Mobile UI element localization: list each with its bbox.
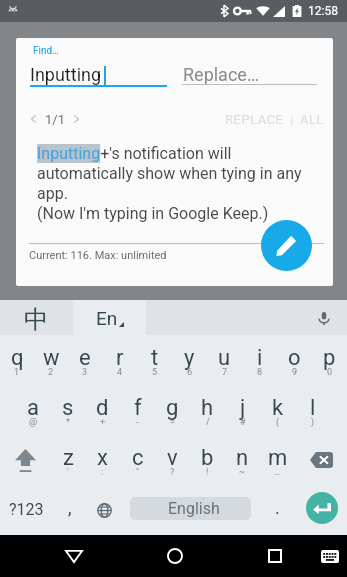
staticText: b: [201, 445, 214, 471]
button[interactable]: z: [51, 435, 85, 485]
button[interactable]: Switch keyboard: [310, 535, 347, 577]
button[interactable]: c: [120, 435, 155, 485]
button[interactable]: REPLACE: [219, 107, 290, 132]
button[interactable]: r: [102, 335, 137, 385]
staticText: o: [288, 345, 301, 371]
button[interactable]: d: [85, 385, 120, 435]
button[interactable]: l: [295, 385, 330, 435]
staticText: @: [29, 417, 38, 428]
staticText: h: [201, 395, 214, 421]
staticText: Current: 116. Max: unlimited: [29, 249, 167, 262]
staticText: Inputting+'s notification will automatic…: [37, 144, 314, 223]
staticText: p: [323, 345, 336, 371]
staticText: English: [168, 499, 220, 518]
staticText: 1/1: [45, 112, 65, 127]
staticText: 中: [24, 304, 49, 335]
staticText: l: [310, 395, 316, 421]
staticText: w: [43, 345, 60, 371]
button[interactable]: h: [190, 385, 225, 435]
button[interactable]: Back: [52, 535, 96, 577]
staticText: n: [236, 445, 249, 471]
staticText: ": [136, 467, 139, 478]
button[interactable]: j: [225, 385, 260, 435]
staticText: En: [96, 307, 118, 329]
staticText: 3: [82, 367, 88, 378]
staticText: #: [240, 417, 246, 428]
staticText: Replace…: [183, 64, 259, 85]
button[interactable]: b: [190, 435, 225, 485]
button[interactable]: Home: [153, 535, 197, 577]
staticText: q: [11, 345, 24, 371]
staticText: =: [170, 417, 175, 428]
button[interactable]: w: [34, 335, 68, 385]
staticText: :: [101, 467, 104, 478]
button[interactable]: En: [73, 300, 146, 335]
staticText: ALL: [300, 112, 324, 127]
button[interactable]: Next match: [67, 110, 85, 128]
staticText: (: [276, 417, 280, 428]
staticText: ': [67, 467, 69, 478]
staticText: 2: [48, 367, 54, 378]
staticText: REPLACE: [225, 112, 284, 127]
button[interactable]: y: [172, 335, 207, 385]
button[interactable]: English: [130, 497, 251, 520]
staticText: j: [240, 395, 246, 421]
button[interactable]: u: [207, 335, 242, 385]
staticText: ?123: [9, 500, 44, 519]
staticText: 12:58: [308, 4, 338, 18]
button[interactable]: Recent apps: [253, 535, 297, 577]
staticText: .: [275, 497, 280, 518]
staticText: ?: [170, 467, 175, 478]
button[interactable]: Change language: [87, 485, 122, 535]
staticText: t: [151, 345, 159, 371]
button[interactable]: k: [260, 385, 295, 435]
staticText: e: [79, 345, 91, 371]
staticText: 9: [292, 367, 298, 378]
button[interactable]: Previous match: [25, 110, 43, 128]
staticText: /: [206, 417, 210, 428]
staticText: v: [167, 445, 178, 471]
button[interactable]: v: [155, 435, 190, 485]
button[interactable]: Voice input: [300, 300, 347, 335]
staticText: s: [62, 395, 74, 421]
button[interactable]: g: [155, 385, 190, 435]
staticText: i: [257, 345, 263, 371]
button[interactable]: ,: [52, 485, 87, 535]
button[interactable]: x: [85, 435, 120, 485]
button[interactable]: a: [16, 385, 50, 435]
button[interactable]: f: [120, 385, 155, 435]
button[interactable]: 中: [0, 300, 73, 335]
staticText: 0: [327, 367, 333, 378]
button[interactable]: Edit: [261, 220, 312, 271]
staticText: …: [274, 467, 281, 478]
staticText: -: [136, 417, 139, 428]
button[interactable]: ALL: [294, 107, 330, 132]
button[interactable]: o: [277, 335, 312, 385]
button[interactable]: e: [68, 335, 102, 385]
button[interactable]: n: [225, 435, 260, 485]
staticText: 4: [117, 367, 123, 378]
button[interactable]: q: [0, 335, 34, 385]
staticText: r: [116, 345, 124, 371]
button[interactable]: s: [50, 385, 85, 435]
staticText: Find…: [33, 45, 59, 57]
button[interactable]: m: [260, 435, 295, 485]
button[interactable]: .: [260, 485, 295, 535]
staticText: ~: [239, 467, 246, 478]
staticText: f: [134, 395, 142, 421]
staticText: Inputting: [30, 64, 102, 85]
button[interactable]: i: [242, 335, 277, 385]
staticText: a: [27, 395, 39, 421]
staticText: d: [96, 395, 109, 421]
staticText: 8: [257, 367, 263, 378]
button[interactable]: p: [312, 335, 347, 385]
staticText: ): [311, 417, 315, 428]
button[interactable]: Backspace: [295, 435, 347, 485]
button[interactable]: Enter: [306, 492, 338, 524]
button[interactable]: Shift: [0, 435, 51, 485]
staticText: 6: [187, 367, 193, 378]
staticText: x: [97, 445, 108, 471]
button[interactable]: ?123: [0, 485, 52, 535]
button[interactable]: t: [137, 335, 172, 385]
staticText: 7: [222, 367, 228, 378]
